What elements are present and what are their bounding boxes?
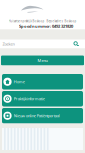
staticText: Menu	[37, 58, 47, 63]
staticText: Nieuw online Patiëntportaal	[14, 113, 60, 118]
button[interactable]: Menu	[1, 55, 84, 65]
staticText: Spoednummer: 0492 321820	[19, 24, 73, 29]
button[interactable]: Zoeken	[0, 39, 85, 48]
staticText: Huisartsenpraktijk Boskoop Bezoekadres: …	[8, 19, 76, 23]
button[interactable]: Home	[2, 74, 83, 89]
staticText: Zoeken	[2, 41, 14, 47]
staticText: Home	[14, 79, 25, 84]
staticText: Praktijkinformatie	[14, 96, 45, 101]
button[interactable]: Praktijkinformatie	[2, 91, 83, 106]
button[interactable]: Nieuw online Patiëntportaal	[2, 108, 83, 123]
